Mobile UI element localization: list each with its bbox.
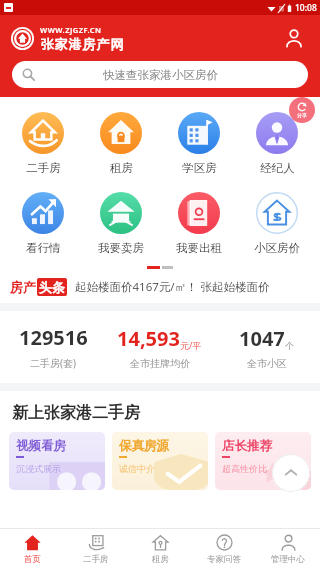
staticText: 保真房源 (119, 438, 169, 454)
button[interactable]: 租房 (128, 529, 192, 570)
button[interactable]: 保真房源 (112, 432, 208, 490)
staticText: 超高性价比 (222, 463, 267, 474)
staticText: 租房 (152, 554, 169, 565)
staticText: 全市小区 (247, 357, 287, 370)
staticText: 管理中心 (271, 554, 305, 565)
staticText: 沉浸式展示 (16, 463, 61, 474)
staticText: 看行情 (26, 241, 61, 255)
staticText: 元/平 (180, 339, 202, 351)
button[interactable]: 专家问答 (192, 529, 256, 570)
staticText: WWW.ZJGZF.CN (40, 25, 102, 35)
staticText: 个 (285, 340, 294, 351)
button[interactable]: 首页 (0, 529, 64, 570)
staticText: 14,593 (117, 325, 180, 352)
button[interactable]: 房产 (10, 278, 310, 296)
staticText: 二手房(套) (30, 356, 76, 370)
staticText: 学区房 (182, 161, 217, 175)
staticText: 首页 (24, 554, 41, 565)
button[interactable]: 二手房 (4, 108, 82, 179)
button[interactable]: 129516 (0, 324, 106, 370)
staticText: 经纪人 (260, 161, 295, 175)
staticText: 小区房价 (254, 241, 300, 255)
staticText: 房产 (10, 279, 36, 295)
button[interactable]: 视频看房 (9, 432, 105, 490)
button[interactable]: 我要卖房 (82, 188, 160, 259)
button[interactable]: 个人中心 (278, 22, 310, 54)
staticText: 专家问答 (207, 554, 241, 565)
button[interactable]: 二手房 (64, 529, 128, 570)
staticText: 1047 (239, 325, 285, 352)
button[interactable]: 快速查张家港小区房价 (12, 61, 308, 88)
staticText: 新上张家港二手房 (12, 403, 140, 423)
staticText: 租房 (110, 161, 133, 175)
staticText: 10:08 (295, 2, 317, 14)
button[interactable]: 看行情 (4, 188, 82, 259)
button[interactable]: 14,593 (106, 325, 213, 370)
staticText: 张家港房产网 (40, 36, 124, 52)
staticText: 视频看房 (16, 438, 66, 454)
button[interactable]: 分享 (289, 97, 315, 123)
staticText: 诚信中介 (119, 463, 155, 474)
button[interactable]: 1047 (213, 325, 320, 370)
button[interactable]: 租房 (82, 108, 160, 179)
staticText: 分享 (297, 112, 307, 118)
staticText: 129516 (19, 324, 88, 351)
button[interactable]: 我要出租 (160, 188, 238, 259)
button[interactable]: 学区房 (160, 108, 238, 179)
staticText: 快速查张家港小区房价 (103, 68, 218, 82)
staticText: 我要卖房 (98, 241, 144, 255)
staticText: 起始楼面价4167元/㎡！ 张起始楼面价 (75, 279, 270, 295)
button[interactable]: 返回顶部 (272, 454, 310, 492)
staticText: 头条 (39, 279, 65, 295)
button[interactable]: 小区房价 (238, 188, 316, 259)
button[interactable]: 经纪人 (238, 108, 316, 179)
staticText: 全市挂牌均价 (130, 357, 190, 370)
button[interactable]: 店长推荐 (215, 432, 311, 490)
staticText: 我要出租 (176, 241, 222, 255)
button[interactable]: 管理中心 (256, 529, 320, 570)
staticText: 店长推荐 (222, 438, 272, 454)
staticText: 二手房 (26, 161, 61, 175)
staticText: 二手房 (83, 554, 109, 565)
